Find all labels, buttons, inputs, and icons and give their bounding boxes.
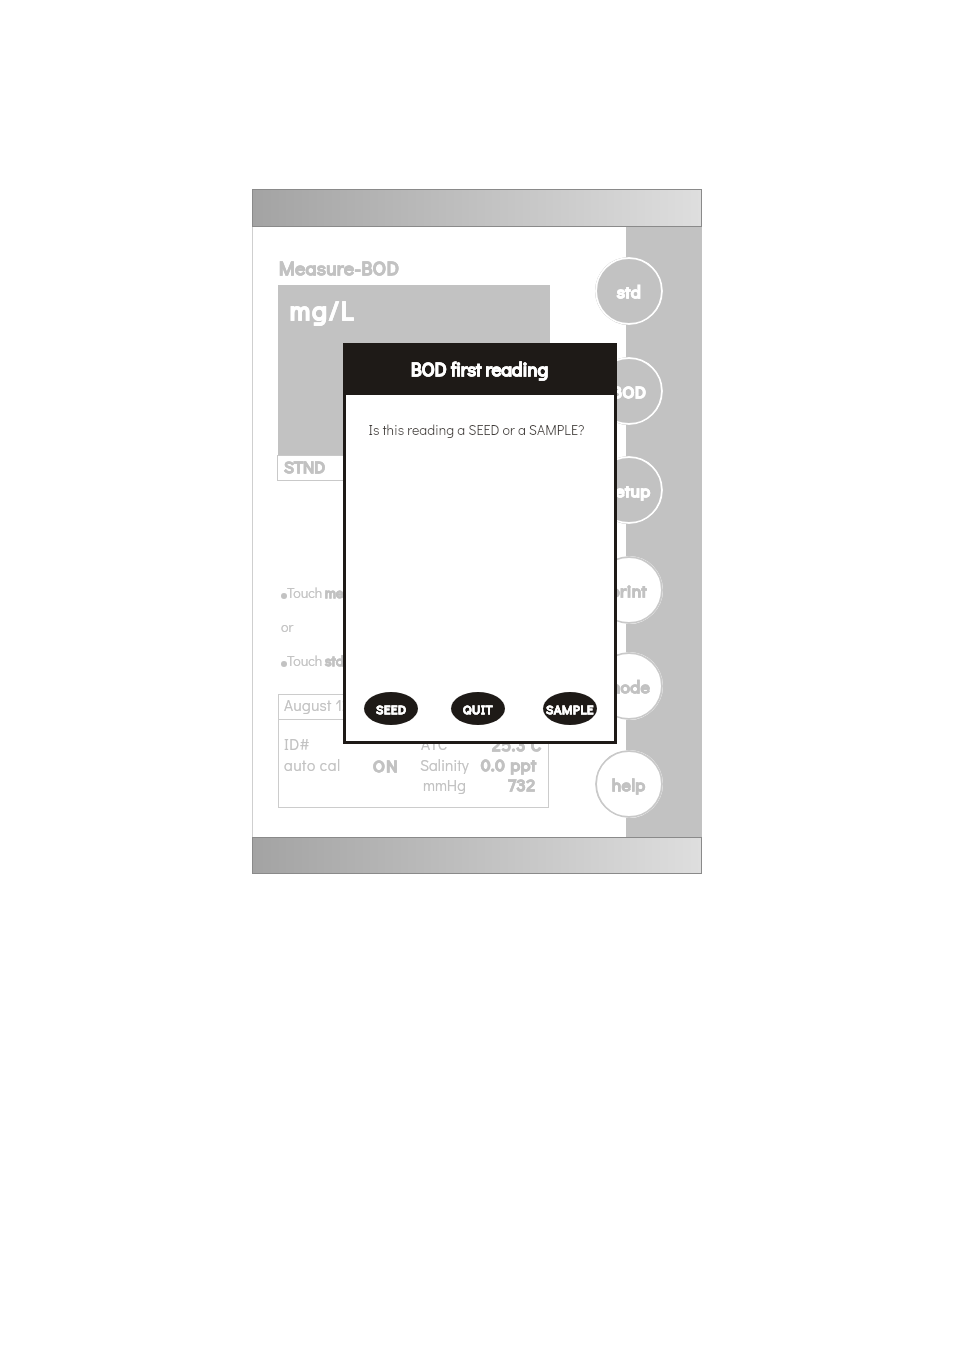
staticText: 25.3 C: [492, 733, 542, 755]
staticText: Salinity: [420, 755, 469, 775]
staticText: Measure-BOD: [279, 255, 400, 280]
staticText: Is this reading a SEED or a SAMPLE?: [340, 420, 613, 438]
staticText: Measure-BOD: [279, 255, 400, 280]
staticText: 0.0 ppt: [481, 753, 537, 775]
staticText: mg/L: [290, 293, 356, 327]
staticText: 732: [508, 773, 536, 795]
staticText: August 12, 2009: [284, 695, 393, 715]
staticText: help: [612, 773, 646, 795]
staticText: BOD first reading: [411, 357, 549, 381]
button[interactable]: QUIT: [449, 690, 507, 727]
staticText: mg/L: [290, 293, 356, 327]
button[interactable]: std: [595, 257, 663, 325]
staticText: std: [325, 651, 345, 669]
button[interactable]: BOD: [595, 357, 663, 425]
staticText: STND: [284, 455, 326, 477]
staticText: print: [610, 579, 648, 601]
staticText: QUIT: [463, 701, 494, 717]
staticText: std: [617, 280, 642, 302]
staticText: mmHg: [423, 775, 466, 795]
staticText: setup: [607, 479, 651, 501]
staticText: SEED: [376, 701, 407, 717]
staticText: BOD: [612, 380, 647, 402]
staticText: ATC: [421, 734, 448, 754]
button[interactable]: SEED: [362, 690, 420, 727]
staticText: std: [617, 280, 642, 302]
staticText: me: [325, 583, 344, 601]
button[interactable]: mode: [595, 652, 663, 720]
staticText: 25.3 C: [492, 733, 542, 755]
staticText: ID#: [284, 734, 310, 754]
staticText: STND: [284, 455, 326, 477]
staticText: print: [610, 579, 648, 601]
staticText: mode: [607, 675, 651, 697]
button[interactable]: print: [595, 556, 663, 624]
button[interactable]: help: [595, 750, 663, 818]
staticText: ON: [373, 754, 399, 776]
staticText: QUIT: [463, 701, 494, 717]
staticText: help: [612, 773, 646, 795]
staticText: setup: [607, 479, 651, 501]
button[interactable]: SAMPLE: [541, 690, 599, 727]
staticText: SAMPLE: [546, 701, 595, 717]
staticText: BOD first reading: [411, 357, 549, 381]
staticText: SEED: [376, 701, 407, 717]
staticText: Touch: [287, 651, 323, 669]
staticText: ON: [373, 754, 399, 776]
staticText: Touch: [287, 583, 323, 601]
staticText: 0.0 ppt: [481, 753, 537, 775]
button[interactable]: setup: [595, 456, 663, 524]
staticText: me: [325, 583, 344, 601]
staticText: SAMPLE: [546, 701, 595, 717]
staticText: mode: [607, 675, 651, 697]
staticText: auto cal: [284, 755, 341, 775]
staticText: 732: [508, 773, 536, 795]
staticText: std: [325, 651, 345, 669]
staticText: or: [281, 617, 294, 635]
staticText: BOD: [612, 380, 647, 402]
